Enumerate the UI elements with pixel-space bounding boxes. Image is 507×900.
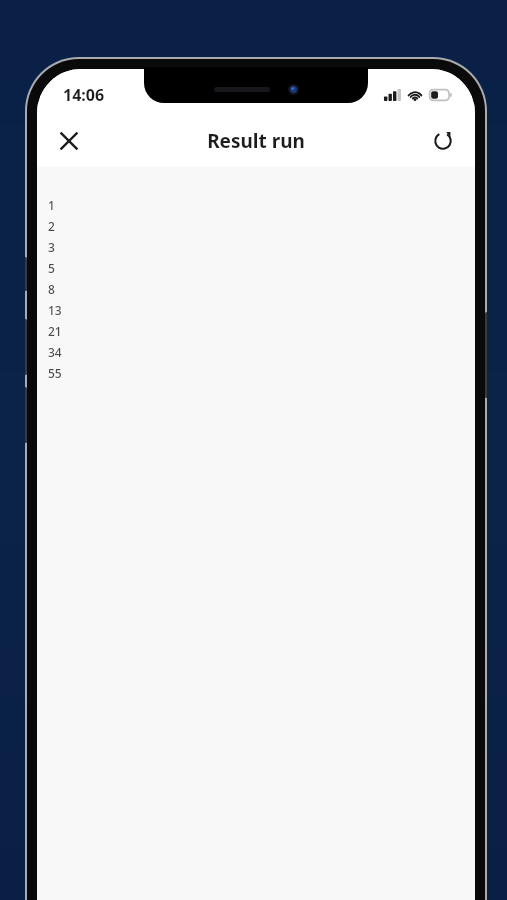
button[interactable]: 1 bbox=[48, 194, 475, 215]
staticText: 8 bbox=[48, 281, 55, 297]
button[interactable]: Close bbox=[47, 119, 91, 163]
staticText: 1 bbox=[48, 197, 55, 213]
button[interactable]: 3 bbox=[48, 236, 475, 257]
staticText: 13 bbox=[48, 302, 62, 318]
staticText: 55 bbox=[48, 365, 62, 381]
staticText: 5 bbox=[48, 260, 55, 276]
staticText: 21 bbox=[48, 323, 62, 339]
staticText: 2 bbox=[48, 218, 55, 234]
button[interactable]: 34 bbox=[48, 341, 475, 362]
button[interactable]: 8 bbox=[48, 278, 475, 299]
button[interactable]: 13 bbox=[48, 299, 475, 320]
staticText: 34 bbox=[48, 344, 62, 360]
button[interactable]: Refresh bbox=[421, 119, 465, 163]
button[interactable]: 5 bbox=[48, 257, 475, 278]
button[interactable]: 21 bbox=[48, 320, 475, 341]
staticText: Result run bbox=[207, 128, 305, 154]
button[interactable]: 2 bbox=[48, 215, 475, 236]
staticText: 3 bbox=[48, 239, 55, 255]
button[interactable]: 55 bbox=[48, 362, 475, 383]
staticText: 14:06 bbox=[63, 84, 105, 106]
